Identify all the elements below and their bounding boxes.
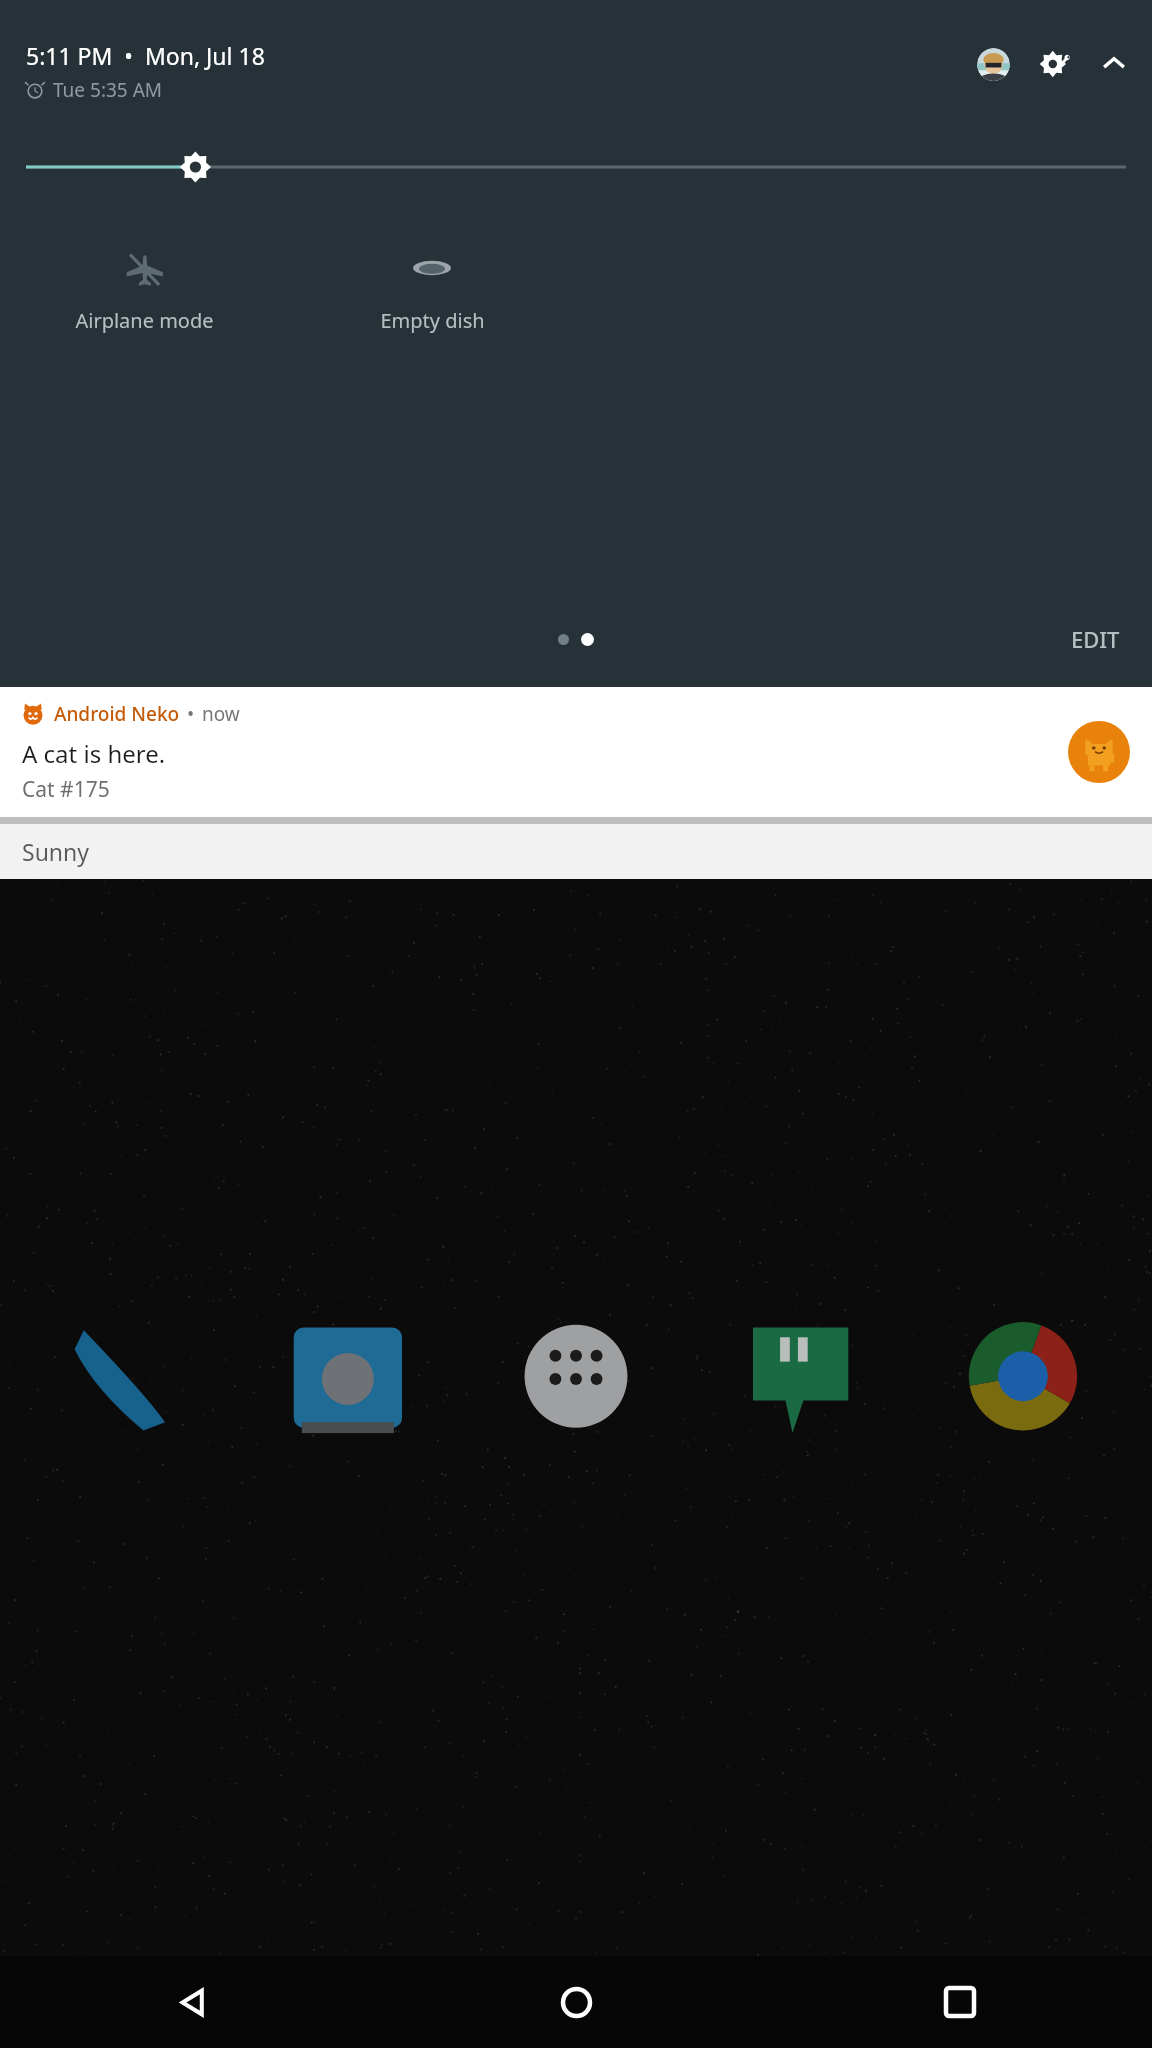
button[interactable]: Cat: [1068, 721, 1130, 783]
staticText: A cat is here.: [22, 737, 166, 770]
staticText: Sunny: [22, 836, 89, 867]
staticText: EDIT: [1071, 624, 1120, 654]
button[interactable]: Settings: [1036, 44, 1076, 84]
staticText: •: [187, 701, 195, 727]
button[interactable]: Home: [384, 1956, 768, 2048]
button[interactable]: Back: [0, 1956, 384, 2048]
button[interactable]: Brightness: [26, 141, 1126, 193]
button[interactable]: Empty dish: [288, 241, 576, 340]
button[interactable]: Android Neko: [0, 687, 1152, 817]
button[interactable]: Collapse: [1096, 46, 1132, 82]
button[interactable]: Recents: [768, 1956, 1152, 2048]
button[interactable]: User profile: [977, 48, 1010, 81]
staticText: Airplane mode: [75, 307, 214, 334]
staticText: Android Neko: [54, 701, 180, 727]
button[interactable]: Sunny: [0, 824, 1152, 879]
staticText: Empty dish: [380, 307, 485, 334]
button[interactable]: EDIT: [1061, 616, 1130, 662]
staticText: 5:11 PM • Mon, Jul 18: [26, 40, 265, 71]
button[interactable]: Airplane mode: [0, 241, 288, 340]
staticText: now: [202, 701, 240, 727]
staticText: Tue 5:35 AM: [53, 77, 163, 103]
staticText: Cat #175: [22, 775, 110, 804]
